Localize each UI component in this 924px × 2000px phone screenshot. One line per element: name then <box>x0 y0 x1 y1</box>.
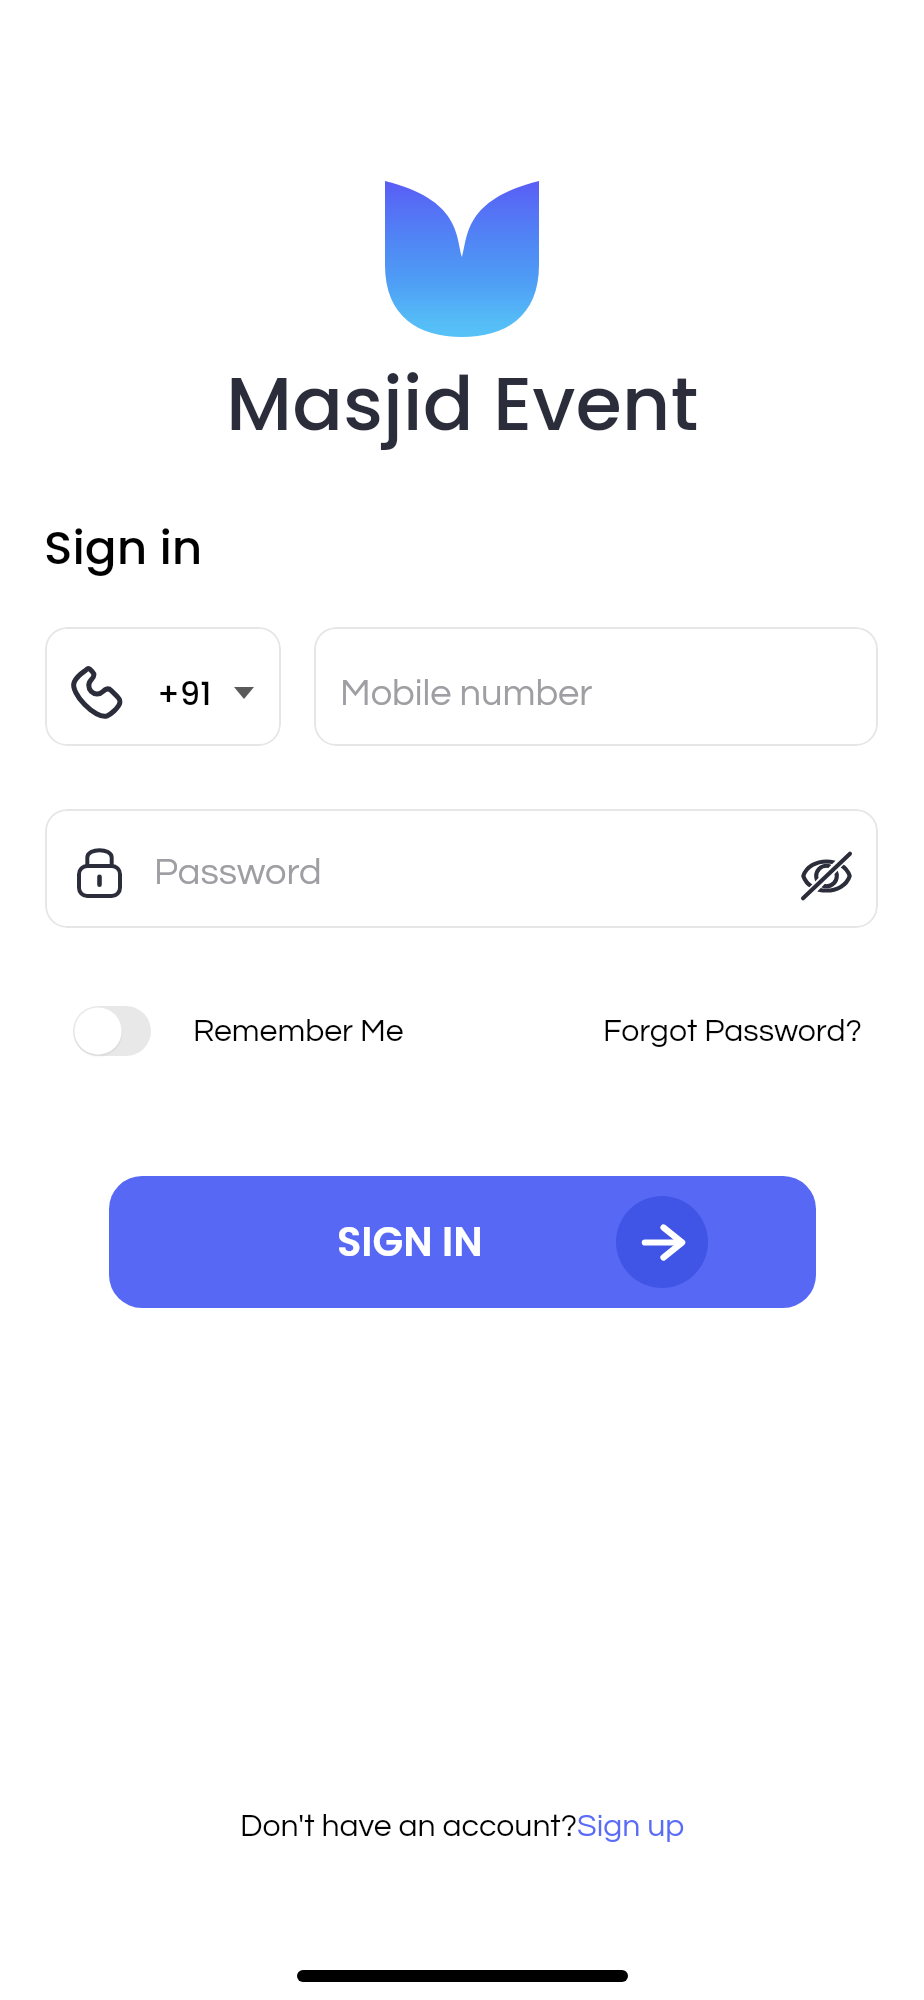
staticText: Password <box>154 853 322 892</box>
button[interactable]: Forgot Password? <box>603 1015 862 1048</box>
button[interactable]: SIGN IN <box>109 1176 816 1308</box>
staticText: Sign in <box>44 515 203 581</box>
button[interactable]: Remember Me <box>73 1006 404 1056</box>
button[interactable]: Don't have an account?Sign up <box>240 1810 685 1843</box>
button[interactable]: Select country code <box>45 627 281 746</box>
staticText: SIGN IN <box>337 1214 483 1270</box>
button[interactable]: Show password <box>789 837 853 901</box>
staticText: Remember Me <box>193 1015 404 1048</box>
button[interactable]: Mobile number <box>314 627 878 746</box>
button[interactable]: Password <box>45 809 878 928</box>
staticText: Masjid Event <box>226 351 699 456</box>
staticText: Mobile number <box>340 674 593 713</box>
staticText: +91 <box>157 671 212 716</box>
